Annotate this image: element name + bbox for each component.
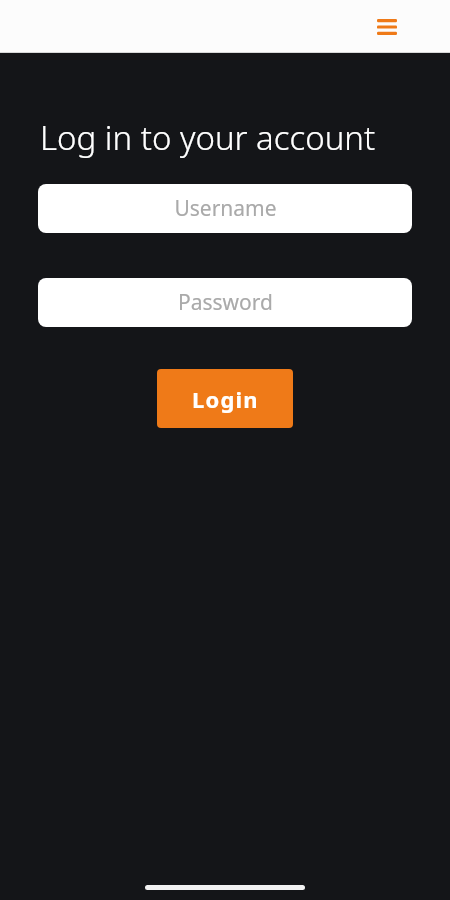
- staticText: Log in to your account: [40, 115, 430, 160]
- staticText: Username: [174, 194, 277, 223]
- button[interactable]: Login: [157, 369, 293, 428]
- staticText: Password: [178, 288, 273, 317]
- staticText: Login: [192, 384, 259, 414]
- button[interactable]: Username: [38, 184, 412, 233]
- button[interactable]: Open navigation menu: [370, 10, 404, 44]
- button[interactable]: Password: [38, 278, 412, 327]
